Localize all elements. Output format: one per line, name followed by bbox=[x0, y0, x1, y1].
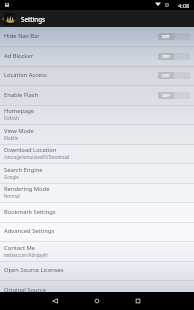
staticText: Homepage bbox=[4, 107, 35, 115]
button[interactable]: Toggle Hide Nav Bar bbox=[158, 33, 190, 40]
staticText: Advanced Settings bbox=[4, 227, 55, 235]
staticText: 4:08 bbox=[178, 2, 190, 10]
staticText: Rendering Mode bbox=[4, 185, 50, 193]
staticText: Google bbox=[4, 174, 19, 180]
staticText: Enable Flash bbox=[4, 91, 39, 99]
staticText: twitter.com/AbhijayKr bbox=[4, 252, 49, 258]
staticText: Mobile bbox=[4, 135, 19, 141]
staticText: /storage/emulated/0/Download bbox=[4, 154, 70, 160]
staticText: Download Location bbox=[4, 146, 57, 154]
button[interactable]: Rendering Mode bbox=[0, 183, 194, 203]
button[interactable]: Ad Blocker bbox=[0, 47, 194, 67]
button[interactable]: Location Access bbox=[0, 66, 194, 86]
button[interactable]: Toggle Ad Blocker bbox=[158, 53, 190, 60]
staticText: Normal bbox=[4, 193, 20, 199]
staticText: Settings bbox=[21, 15, 46, 23]
button[interactable]: Back bbox=[0, 10, 5, 27]
staticText: Hide Nav Bar bbox=[4, 32, 40, 40]
staticText: Ad Blocker bbox=[4, 52, 34, 60]
staticText: View Mode bbox=[4, 127, 34, 135]
button[interactable]: View Mode bbox=[0, 125, 194, 145]
button[interactable]: Bookmark Settings bbox=[0, 203, 194, 223]
staticText: Location Access bbox=[4, 71, 47, 79]
button[interactable]: Homepage bbox=[0, 105, 194, 125]
staticText: Original Source bbox=[4, 286, 46, 292]
button[interactable]: Toggle Enable Flash bbox=[158, 92, 190, 99]
button[interactable]: Toggle Location Access bbox=[158, 72, 190, 79]
staticText: OFF bbox=[162, 34, 170, 39]
staticText: Search Engine bbox=[4, 166, 43, 174]
button[interactable]: Open Source Licenses bbox=[0, 261, 194, 281]
staticText: OFF bbox=[162, 93, 170, 98]
staticText: Bookmark Settings bbox=[4, 208, 56, 216]
staticText: Contact Me bbox=[4, 244, 36, 252]
button[interactable]: Contact Me bbox=[0, 242, 194, 262]
button[interactable]: Recents bbox=[126, 292, 150, 310]
staticText: OFF bbox=[162, 73, 170, 78]
button[interactable]: Back bbox=[43, 292, 67, 310]
staticText: OFF bbox=[162, 54, 170, 59]
button[interactable]: Enable Flash bbox=[0, 86, 194, 106]
staticText: Default bbox=[4, 115, 20, 121]
button[interactable]: Hide Nav Bar bbox=[0, 27, 194, 47]
button[interactable]: Home bbox=[85, 292, 109, 310]
button[interactable]: Search Engine bbox=[0, 164, 194, 184]
button[interactable]: Download Location bbox=[0, 144, 194, 164]
button[interactable]: Original Source bbox=[0, 281, 194, 292]
staticText: Open Source Licenses bbox=[4, 266, 64, 274]
button[interactable]: Advanced Settings bbox=[0, 222, 194, 242]
